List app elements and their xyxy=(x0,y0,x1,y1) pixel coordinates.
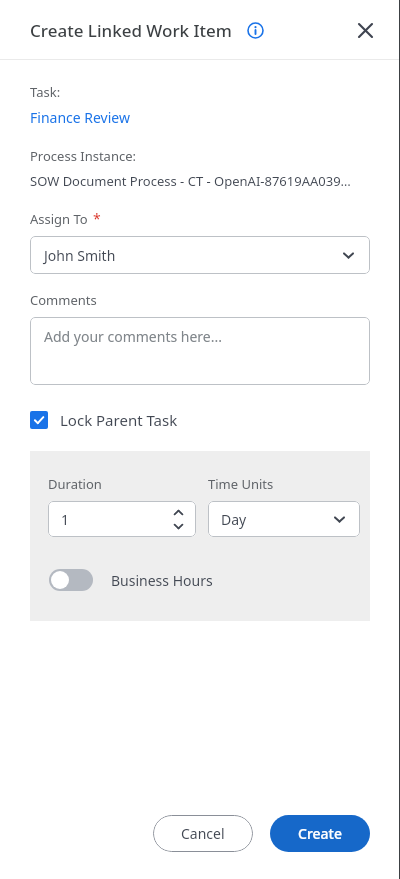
button[interactable]: Business Hours xyxy=(48,565,214,595)
staticText: Finance Review xyxy=(30,108,130,127)
staticText: SOW Document Process - CT - OpenAI-87619… xyxy=(30,172,351,190)
button[interactable]: Add your comments here... xyxy=(30,317,370,385)
staticText: * xyxy=(93,209,101,228)
staticText: Time Units xyxy=(208,475,274,493)
button[interactable]: John Smith xyxy=(30,236,370,274)
button[interactable]: Lock Parent Task xyxy=(30,406,186,434)
button[interactable]: 1 xyxy=(48,501,196,537)
staticText: Cancel xyxy=(181,824,225,843)
button[interactable]: Cancel xyxy=(153,815,253,852)
staticText: Create Linked Work Item xyxy=(30,19,232,42)
button[interactable]: Close xyxy=(348,13,382,47)
button[interactable]: Create xyxy=(270,815,370,852)
staticText: 1 xyxy=(61,510,70,529)
staticText: Duration xyxy=(48,475,102,493)
staticText: Lock Parent Task xyxy=(60,410,178,430)
staticText: Process Instance: xyxy=(30,147,136,165)
staticText: Task: xyxy=(30,83,61,101)
staticText: Comments xyxy=(30,291,97,309)
staticText: John Smith xyxy=(44,246,116,265)
button[interactable]: Day xyxy=(208,501,360,537)
staticText: Add your comments here... xyxy=(44,327,223,346)
staticText: Create xyxy=(298,824,342,843)
staticText: Assign To xyxy=(30,210,88,228)
button[interactable]: Information xyxy=(242,17,268,43)
button[interactable]: Finance Review xyxy=(30,108,130,127)
staticText: Day xyxy=(221,510,247,529)
staticText: Business Hours xyxy=(111,571,213,590)
